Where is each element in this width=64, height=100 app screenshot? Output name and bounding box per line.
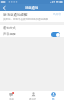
staticText: 已开启 — [53, 12, 61, 15]
button[interactable]: 声音提醒 — [0, 31, 64, 37]
staticText: 关闭后，您将不会收到新消息的通知提醒 — [3, 18, 48, 21]
staticText: 我 — [52, 98, 55, 100]
staticText: 消息 — [9, 98, 14, 100]
staticText: 声音提醒 — [3, 32, 16, 36]
button[interactable]: 消息 — [0, 91, 22, 100]
staticText: 通讯录 — [29, 98, 37, 100]
staticText: 消息通知 — [25, 6, 39, 10]
staticText: 新消息通知提醒 — [3, 13, 28, 17]
button[interactable]: 通讯录 — [22, 91, 43, 100]
button[interactable]: Sound toggle — [51, 32, 60, 37]
button[interactable]: Back — [0, 4, 8, 11]
button[interactable]: 新消息通知提醒 — [0, 11, 64, 22]
button[interactable]: 我 — [43, 91, 64, 100]
staticText: 通知方式 — [3, 26, 16, 30]
